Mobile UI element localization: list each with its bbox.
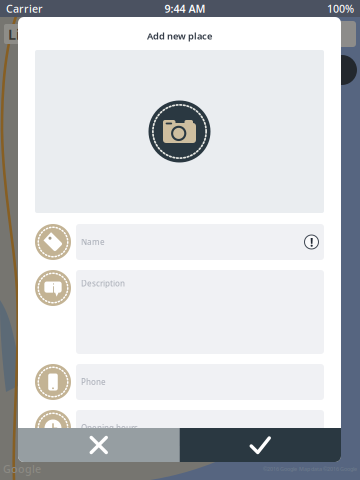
staticText: Phone (81, 377, 106, 387)
staticText: Google (3, 462, 41, 476)
button[interactable]: Cancel (18, 428, 179, 462)
staticText: Opening hours (81, 423, 138, 433)
staticText: Carrier (6, 1, 43, 16)
staticText: Add new place (147, 30, 212, 42)
staticText: Description (81, 278, 125, 289)
staticText: Name (81, 237, 105, 247)
staticText: i (51, 279, 54, 297)
staticText: 100% (327, 1, 354, 16)
staticText: Li (8, 24, 20, 44)
staticText: ©2016 Google Map data ©2016 Google (263, 465, 357, 472)
staticText: 9:44 AM (164, 1, 205, 16)
staticText: ! (310, 234, 313, 250)
button[interactable]: Save (179, 428, 341, 462)
